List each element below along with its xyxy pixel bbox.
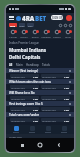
- staticText: Mumbai Ind: [42, 86, 56, 89]
- staticText: 1.85: [64, 119, 69, 122]
- staticText: 1.85: [33, 86, 38, 89]
- button[interactable]: First innings score 0 to 5: [6, 101, 74, 112]
- button[interactable]: SIGN UP: [51, 15, 63, 20]
- button[interactable]: Mumbai Ind: [10, 118, 39, 122]
- button[interactable]: More: [62, 28, 73, 39]
- staticText: 1.85: [33, 75, 38, 78]
- staticText: LINE: [19, 24, 25, 27]
- staticText: Indian Premier League: [9, 41, 39, 45]
- button[interactable]: All: [9, 63, 13, 67]
- button[interactable]: Mumbai Ind: [10, 74, 39, 78]
- staticText: Tennis: [31, 35, 39, 38]
- staticText: Mumbai Indians: [9, 47, 47, 53]
- staticText: 4rabet.com: [9, 135, 22, 138]
- staticText: Winner (first innings): [9, 69, 39, 73]
- staticText: More: [65, 35, 71, 38]
- button[interactable]: Mumbai Ind: [41, 118, 70, 122]
- staticText: LIVE: [10, 24, 16, 27]
- button[interactable]: Mumbai Ind: [41, 85, 70, 89]
- button[interactable]: Mumbai Ind: [10, 107, 39, 111]
- button[interactable]: Winner (first innings): [6, 68, 74, 79]
- button[interactable]: Shortcut: [8, 126, 24, 133]
- button[interactable]: eSport: [51, 28, 62, 39]
- staticText: Soccer: [20, 35, 28, 38]
- button[interactable]: Back: [56, 142, 62, 148]
- staticText: All: [9, 63, 13, 67]
- staticText: Mumbai Ind: [42, 75, 56, 78]
- button[interactable]: LIVE: [9, 23, 17, 27]
- button[interactable]: Shortcut: [40, 126, 56, 133]
- button[interactable]: Profile: [66, 15, 72, 21]
- staticText: 1.85: [64, 97, 69, 100]
- staticText: TOP: [28, 24, 33, 27]
- staticText: Mumbai Ind: [42, 119, 56, 122]
- staticText: Mumbai Ind: [11, 86, 25, 89]
- staticText: 1.85: [33, 119, 38, 122]
- button[interactable]: Total runs over/under: [6, 112, 74, 123]
- staticText: 1.85: [33, 97, 38, 100]
- button[interactable]: Shortcut: [24, 126, 40, 133]
- button[interactable]: Quick link: [64, 24, 67, 27]
- button[interactable]: Quick link: [59, 24, 62, 27]
- button[interactable]: Handicap: [26, 63, 39, 67]
- button[interactable]: 4RA: [16, 14, 47, 22]
- staticText: Will Shane be a Six: [9, 91, 35, 95]
- button[interactable]: Cricket: [7, 28, 18, 39]
- button[interactable]: Tennis: [29, 28, 40, 39]
- staticText: Mumbai Ind: [11, 108, 25, 111]
- staticText: BET: [35, 14, 47, 22]
- button[interactable]: Mumbai Ind: [41, 96, 70, 100]
- staticText: Total runs over/under: [9, 113, 40, 117]
- staticText: 1.85: [64, 86, 69, 89]
- staticText: Delhi Capitals: [9, 54, 41, 60]
- button[interactable]: Kabaddi: [40, 28, 51, 39]
- staticText: SIGN UP: [52, 16, 63, 20]
- button[interactable]: Menu: [9, 15, 14, 20]
- staticText: Mumbai Ind: [11, 97, 25, 100]
- button[interactable]: Mumbai Ind: [41, 107, 70, 111]
- staticText: 1.85: [64, 75, 69, 78]
- button[interactable]: Mumbai Ind: [10, 85, 39, 89]
- staticText: 1.85: [64, 108, 69, 111]
- staticText: First innings score 0 to 5: [9, 102, 43, 106]
- staticText: Main: [16, 63, 23, 67]
- staticText: 4RA: [22, 14, 35, 22]
- staticText: Which team wins the coin toss: [9, 80, 51, 84]
- button[interactable]: Main: [16, 63, 23, 67]
- staticText: Mumbai Ind: [42, 97, 56, 100]
- button[interactable]: Shortcut: [56, 126, 72, 133]
- staticText: Cricket: [9, 35, 17, 38]
- staticText: Handicap: [26, 63, 39, 67]
- button[interactable]: Which team wins the coin toss: [6, 79, 74, 90]
- staticText: Totals: [42, 63, 50, 67]
- button[interactable]: Soccer: [18, 28, 29, 39]
- staticText: Mumbai Ind: [42, 108, 56, 111]
- button[interactable]: LINE: [19, 23, 25, 27]
- button[interactable]: Will Shane be a Six: [6, 90, 74, 101]
- button[interactable]: Mumbai Ind: [10, 96, 39, 100]
- staticText: Mumbai Ind: [11, 75, 25, 78]
- button[interactable]: Quick link: [69, 24, 72, 27]
- staticText: eSport: [53, 35, 61, 38]
- staticText: Kabaddi: [41, 35, 51, 38]
- button[interactable]: Home: [37, 142, 43, 148]
- button[interactable]: Mumbai Ind: [41, 74, 70, 78]
- button[interactable]: Totals: [42, 63, 50, 67]
- staticText: 1.85: [33, 108, 38, 111]
- button[interactable]: TOP: [27, 23, 34, 27]
- staticText: Mumbai Ind: [11, 119, 25, 122]
- button[interactable]: Recents: [19, 142, 25, 148]
